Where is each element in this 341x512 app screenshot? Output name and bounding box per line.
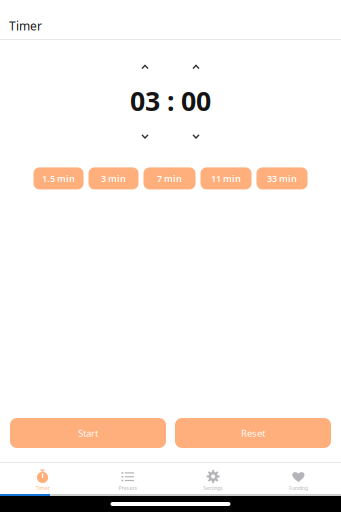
button[interactable]: Settings xyxy=(170,461,256,496)
button[interactable]: Reset xyxy=(175,418,331,448)
staticText: Reset xyxy=(241,426,265,440)
button[interactable]: 7 min xyxy=(143,167,195,189)
staticText: 03 : 00 xyxy=(130,83,211,118)
staticText: Timer xyxy=(36,484,50,492)
button[interactable]: Decrease minutes xyxy=(130,129,160,143)
staticText: 7 min xyxy=(157,172,182,184)
button[interactable]: Presets xyxy=(85,461,170,496)
button[interactable]: Increase seconds xyxy=(181,60,211,74)
staticText: 3 min xyxy=(101,172,126,184)
button[interactable]: 11 min xyxy=(200,167,251,189)
button[interactable]: Funding xyxy=(256,461,341,496)
button[interactable]: 1.5 min xyxy=(33,167,83,189)
staticText: Funding xyxy=(289,484,308,492)
staticText: Start xyxy=(78,426,98,440)
button[interactable]: Start xyxy=(10,418,166,448)
staticText: Presets xyxy=(118,484,137,492)
staticText: 11 min xyxy=(211,172,241,184)
staticText: Settings xyxy=(203,484,223,492)
button[interactable]: Increase minutes xyxy=(130,60,160,74)
staticText: 33 min xyxy=(267,172,297,184)
button[interactable]: 3 min xyxy=(88,167,138,189)
staticText: Timer xyxy=(9,18,42,34)
button[interactable]: Decrease seconds xyxy=(181,129,211,143)
staticText: 1.5 min xyxy=(42,172,75,184)
button[interactable]: 33 min xyxy=(256,167,307,189)
button[interactable]: Timer xyxy=(0,461,85,496)
